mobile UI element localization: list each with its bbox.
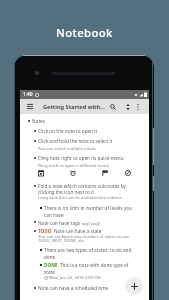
button[interactable]: Navigation menu	[23, 99, 37, 114]
staticText: clicking the icon next to it	[38, 189, 94, 195]
staticText: Long-click the icon to unfold entire sub…	[38, 195, 123, 201]
staticText: Notes	[32, 118, 45, 124]
staticText: can have	[44, 212, 64, 218]
button[interactable]: Search	[107, 99, 119, 114]
staticText: done	[44, 254, 56, 260]
staticText: TODO, NEXT, DONE, etc.	[38, 238, 86, 244]
button[interactable]: New note	[125, 277, 143, 295]
staticText: Fling it left to open a different menu	[38, 163, 110, 169]
staticText: There are two types of states: to-do and	[44, 247, 132, 253]
staticText: Getting Started with...	[43, 103, 106, 111]
staticText: state	[44, 269, 55, 275]
staticText: Note can have tags tag1 tag2	[38, 220, 101, 226]
staticText: Wed, Jan 24, 2018 3:00 PM	[49, 275, 101, 281]
button[interactable]: Cancel	[124, 169, 132, 177]
staticText: Fling note right to open its quick-menu	[38, 155, 124, 161]
button[interactable]: Sort order	[122, 99, 133, 114]
staticText: Note can have a scheduled time	[38, 285, 109, 291]
button[interactable]: Deadline	[69, 169, 77, 177]
staticText: Click and hold the note to select it	[38, 138, 113, 144]
staticText: Click on the note to open it	[38, 128, 98, 134]
staticText: TODO Note can have a state	[38, 228, 102, 234]
staticText: There is no limit in number of levels yo…	[44, 205, 132, 211]
button[interactable]: Schedule	[37, 169, 45, 177]
button[interactable]: Flag	[101, 169, 109, 177]
staticText: You can configure any number of states t…	[38, 234, 130, 240]
staticText: Fold a note which contains sub-notes by	[38, 183, 126, 189]
staticText: You can select multiple notes.	[38, 146, 97, 152]
staticText: 1:40	[23, 91, 33, 98]
staticText: Notebook	[56, 25, 113, 40]
button[interactable]: More options	[133, 99, 143, 114]
staticText: DONE This is a note with done type of	[44, 262, 129, 268]
